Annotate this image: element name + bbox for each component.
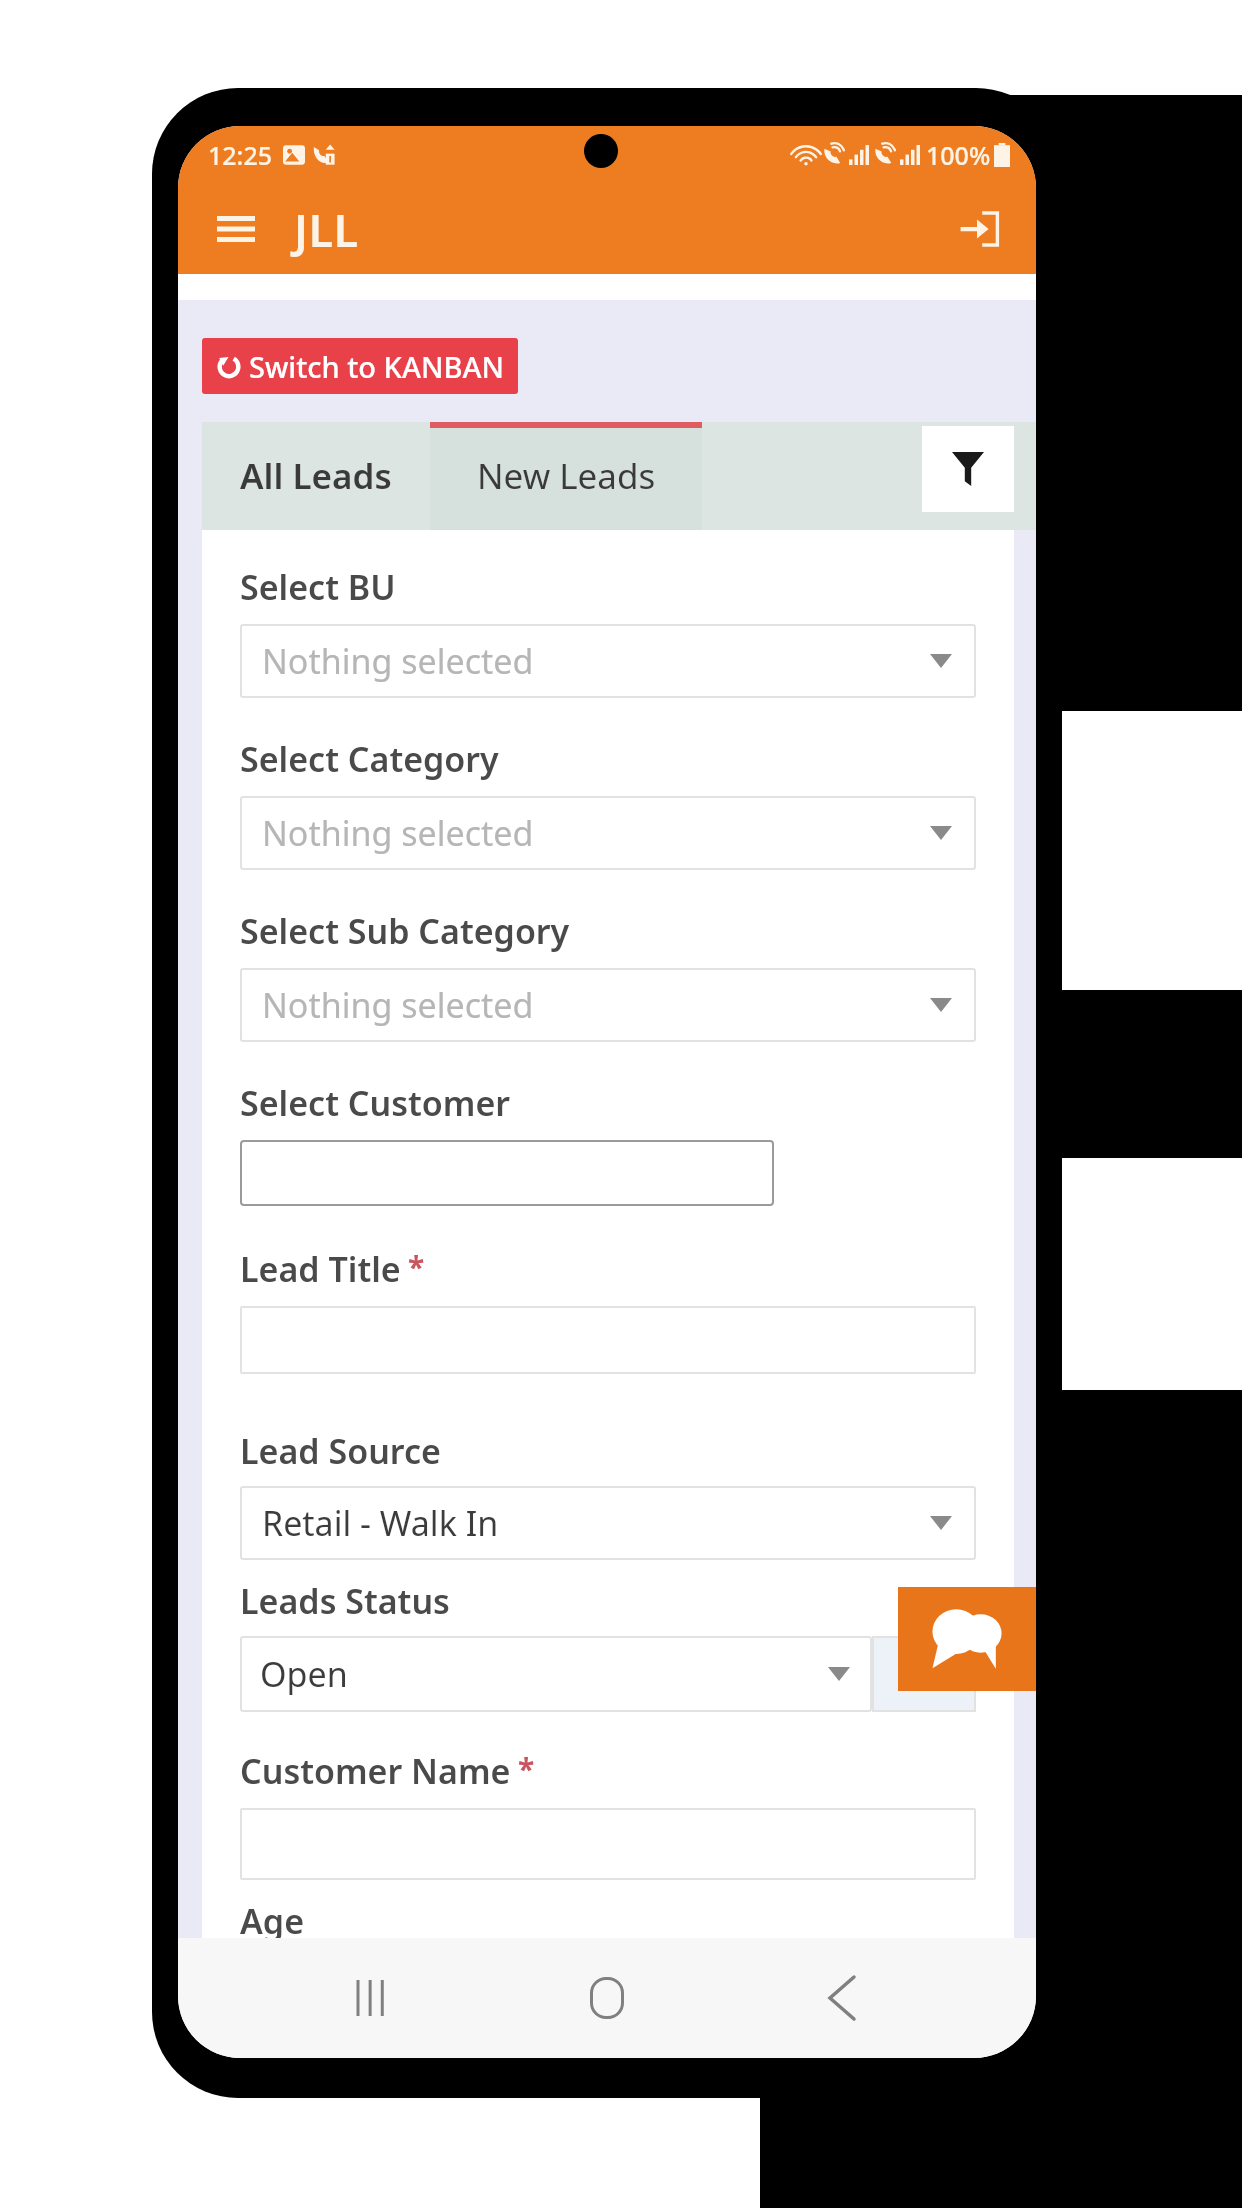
button[interactable]: Lead Title input xyxy=(240,1306,976,1374)
button[interactable]: Chat support xyxy=(898,1587,1036,1691)
staticText: All Leads xyxy=(240,452,392,500)
staticText: Lead Source xyxy=(240,1428,441,1474)
staticText: Leads Status xyxy=(240,1578,450,1624)
button[interactable]: Open navigation menu xyxy=(208,201,264,257)
button[interactable]: Add lead status xyxy=(872,1636,976,1712)
button[interactable]: Open xyxy=(240,1636,872,1712)
button[interactable]: Retail - Walk In xyxy=(240,1486,976,1560)
staticText: Select Category xyxy=(240,736,499,782)
button[interactable]: New Leads xyxy=(430,422,702,530)
staticText: Retail - Walk In xyxy=(262,1500,499,1546)
staticText: * xyxy=(518,1748,535,1789)
button[interactable]: Nothing selected xyxy=(240,624,976,698)
staticText: Open xyxy=(260,1651,348,1697)
staticText: Lead Title xyxy=(240,1246,401,1292)
staticText: 100% xyxy=(926,138,991,172)
staticText: JLL xyxy=(294,199,359,260)
button[interactable]: Home xyxy=(490,1938,724,2058)
button[interactable]: Recent apps xyxy=(256,1938,490,2058)
button[interactable]: Select Customer input xyxy=(240,1140,774,1206)
staticText: Select Customer xyxy=(240,1080,511,1126)
staticText: Nothing selected xyxy=(262,638,534,684)
button[interactable]: Filter xyxy=(922,426,1014,512)
staticText: Switch to KANBAN xyxy=(249,347,504,386)
staticText: * xyxy=(408,1246,425,1287)
button[interactable]: Logout xyxy=(950,200,1008,258)
staticText: Nothing selected xyxy=(262,810,534,856)
staticText: 12:25 xyxy=(208,138,273,172)
staticText: New Leads xyxy=(477,452,656,500)
staticText: Nothing selected xyxy=(262,982,534,1028)
button[interactable]: Nothing selected xyxy=(240,968,976,1042)
button[interactable]: Switch to KANBAN xyxy=(202,338,518,394)
staticText: Customer Name xyxy=(240,1748,511,1794)
button[interactable]: Customer Name input xyxy=(240,1808,976,1880)
button[interactable]: All Leads xyxy=(202,422,430,530)
button[interactable]: Back xyxy=(724,1938,958,2058)
staticText: Select BU xyxy=(240,564,396,610)
button[interactable]: Nothing selected xyxy=(240,796,976,870)
staticText: Select Sub Category xyxy=(240,908,570,954)
staticText: Age xyxy=(240,1898,305,1938)
